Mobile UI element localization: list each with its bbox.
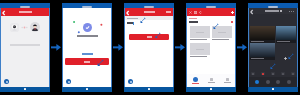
button[interactable]: Camera feed xyxy=(276,26,296,40)
button[interactable]: Tab xyxy=(255,80,259,84)
button[interactable]: Device card xyxy=(212,26,232,38)
button[interactable]: Tab xyxy=(219,78,235,83)
button[interactable]: Add xyxy=(230,10,234,14)
button[interactable]: Close xyxy=(188,10,193,15)
button[interactable]: Back xyxy=(125,10,130,15)
button[interactable]: Camera device xyxy=(10,23,19,32)
button[interactable]: Control xyxy=(281,72,285,75)
button[interactable]: Tab xyxy=(266,80,270,84)
button[interactable]: Control xyxy=(261,72,265,75)
button[interactable]: Camera feed xyxy=(250,26,275,40)
button[interactable]: Camera feed xyxy=(250,43,275,57)
button[interactable]: Help xyxy=(128,79,133,84)
button[interactable]: Device card xyxy=(190,26,210,38)
button[interactable]: Help xyxy=(4,79,9,84)
button[interactable] xyxy=(65,58,109,65)
button[interactable]: Back xyxy=(1,10,6,15)
button[interactable]: Tab xyxy=(276,80,280,84)
button[interactable]: Device card xyxy=(190,43,210,55)
button[interactable]: Control xyxy=(271,72,275,75)
button[interactable]: Control xyxy=(291,72,295,75)
button[interactable]: Control xyxy=(251,72,255,75)
button[interactable]: User xyxy=(30,22,40,32)
button[interactable]: Grid view xyxy=(193,10,198,15)
button[interactable]: Tab xyxy=(203,78,219,83)
button[interactable]: Refresh xyxy=(198,10,203,15)
button[interactable]: Help xyxy=(66,79,71,84)
button[interactable]: Back xyxy=(249,9,254,14)
button[interactable]: Tab xyxy=(287,80,291,84)
button[interactable]: Devices tab xyxy=(187,77,203,84)
button[interactable] xyxy=(129,34,169,40)
button[interactable] xyxy=(125,20,173,26)
